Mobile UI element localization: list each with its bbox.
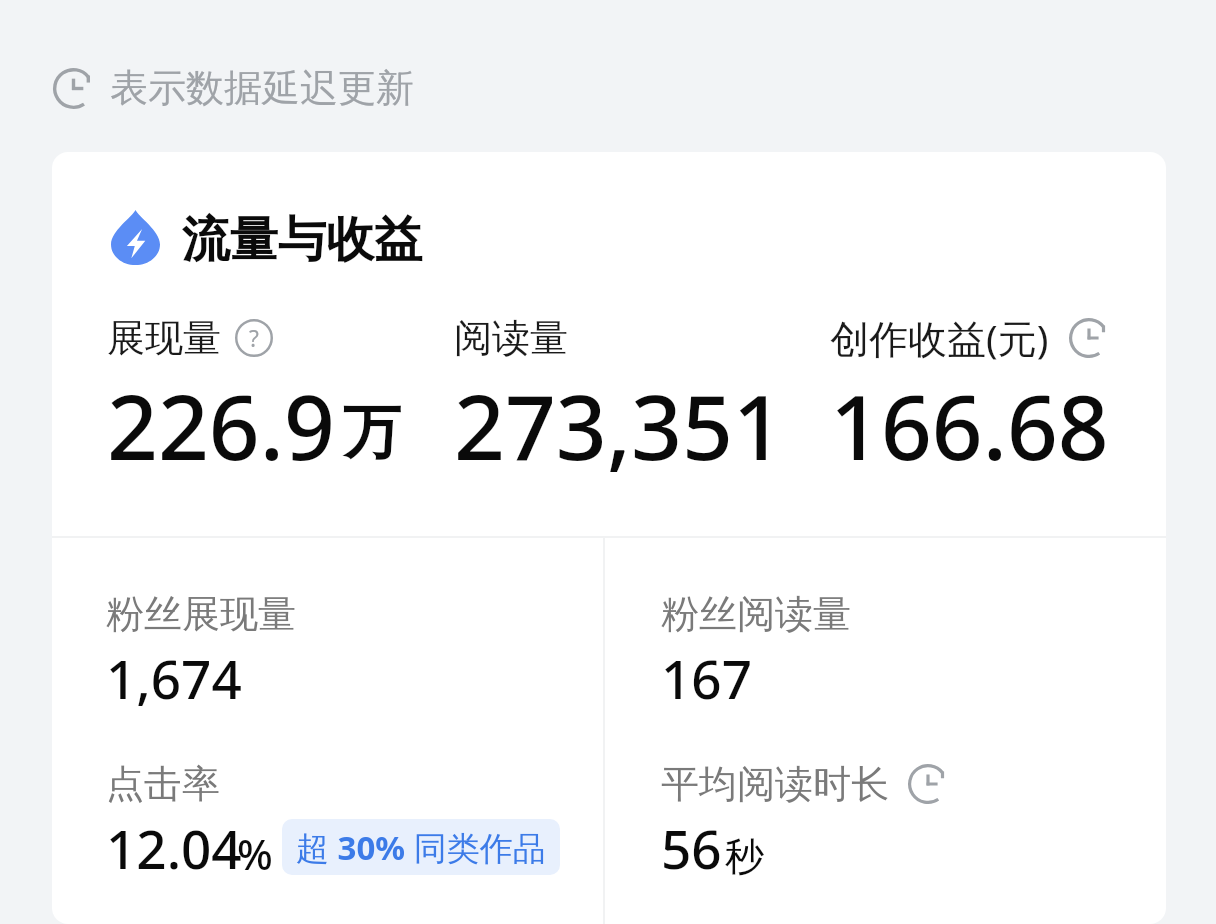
staticText: 超 30% 同类作品 <box>296 825 546 870</box>
staticText: 秒 <box>725 832 764 881</box>
staticText: 流量与收益 <box>182 210 422 270</box>
staticText: 273,351 <box>454 365 784 486</box>
button[interactable]: 粉丝阅读量 <box>605 538 1166 924</box>
other: 阅读时长数据延迟更新 <box>908 764 948 804</box>
button[interactable]: 展现量 <box>52 310 454 486</box>
button[interactable]: 粉丝展现量 <box>52 538 603 924</box>
staticText: 万 <box>343 396 401 469</box>
staticText: 点击率 <box>106 760 220 808</box>
staticText: 166.68 <box>830 365 1109 486</box>
staticText: 粉丝展现量 <box>106 590 296 638</box>
button[interactable]: 阅读量 <box>454 310 830 486</box>
button[interactable]: 流量与收益 <box>52 210 1166 270</box>
button[interactable]: 表示数据延迟更新 <box>53 64 414 112</box>
staticText: 226.9 <box>107 365 335 486</box>
staticText: 平均阅读时长 <box>661 760 889 808</box>
staticText: 56 <box>661 812 722 884</box>
button[interactable]: 超 30% 同类作品 <box>282 819 560 875</box>
staticText: 1,674 <box>106 642 242 714</box>
staticText: ? <box>249 323 259 354</box>
staticText: % <box>237 825 273 882</box>
staticText: 展现量 <box>107 314 221 362</box>
button[interactable]: 创作收益(元) <box>830 310 1166 486</box>
button[interactable]: 关于展现量的说明 <box>235 319 273 357</box>
staticText: 表示数据延迟更新 <box>110 64 414 112</box>
staticText: 12.04 <box>106 812 242 884</box>
staticText: 粉丝阅读量 <box>661 590 851 638</box>
staticText: 167 <box>661 642 752 714</box>
staticText: 阅读量 <box>454 314 568 362</box>
staticText: 创作收益(元) <box>830 311 1049 364</box>
other: 收益数据延迟更新 <box>1069 318 1109 358</box>
